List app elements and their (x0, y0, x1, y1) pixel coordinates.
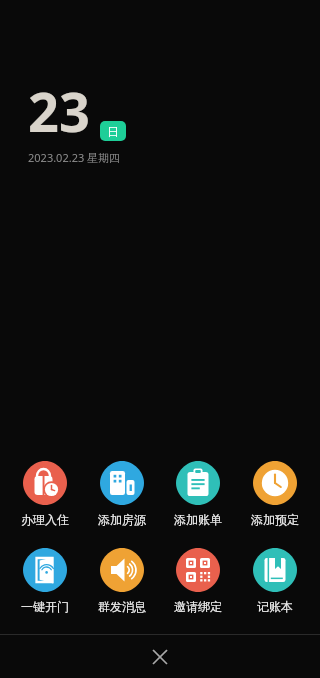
staticText: 办理入住 (21, 512, 69, 527)
staticText: 2023.02.23 星期四 (28, 150, 121, 165)
button[interactable]: 添加房源 (91, 461, 153, 527)
staticText: 添加房源 (98, 512, 146, 527)
button[interactable]: 添加账单 (167, 461, 229, 527)
staticText: 添加预定 (251, 512, 299, 527)
staticText: 邀请绑定 (174, 599, 222, 614)
button[interactable]: 办理入住 (14, 461, 76, 527)
staticText: 添加账单 (174, 512, 222, 527)
button[interactable]: Close (0, 635, 320, 678)
staticText: 日 (107, 124, 119, 139)
staticText: 群发消息 (98, 599, 146, 614)
button[interactable]: 添加预定 (244, 461, 306, 527)
button[interactable]: 群发消息 (91, 548, 153, 614)
button[interactable]: 邀请绑定 (167, 548, 229, 614)
staticText: 23 (28, 74, 90, 148)
staticText: 一键开门 (21, 599, 69, 614)
staticText: 记账本 (257, 599, 293, 614)
button[interactable]: 一键开门 (14, 548, 76, 614)
button[interactable]: 记账本 (244, 548, 306, 614)
